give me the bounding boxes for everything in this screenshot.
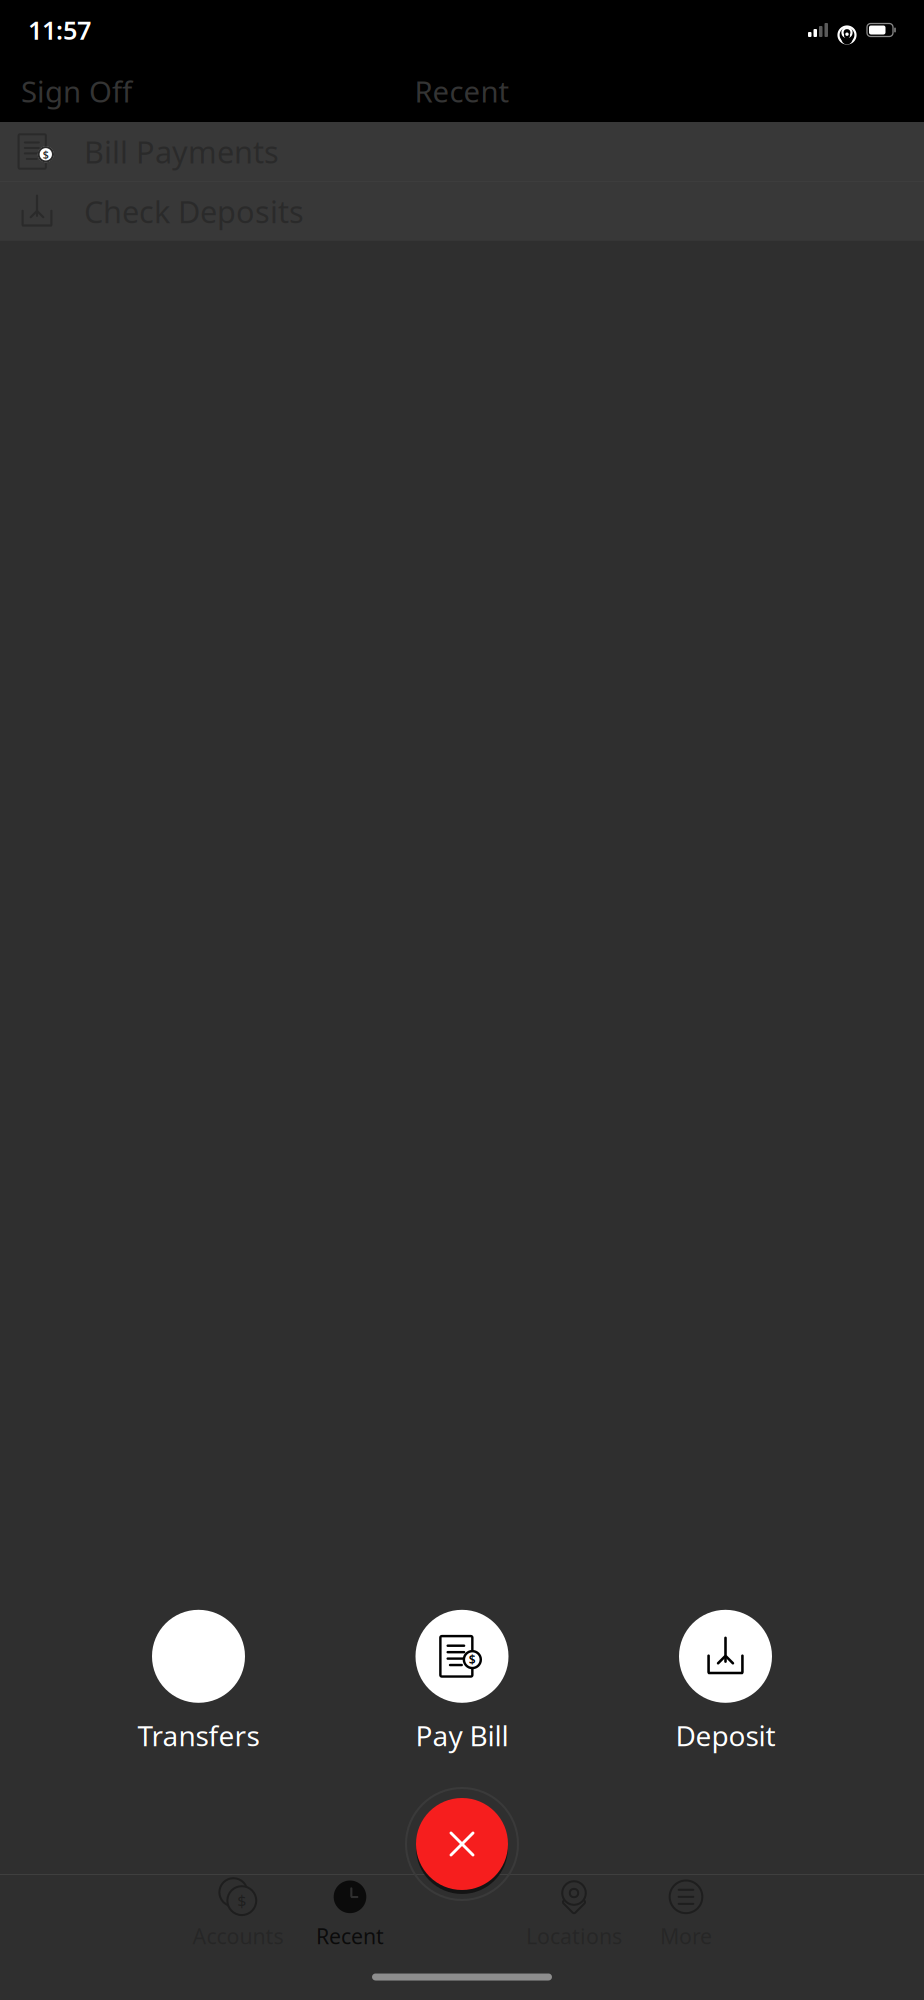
staticText: Transfers: [137, 1717, 259, 1754]
button[interactable]: $: [0, 122, 924, 181]
button[interactable]: Close menu: [404, 1786, 520, 1902]
staticText: Bill Payments: [84, 131, 279, 172]
staticText: $: [469, 1652, 476, 1667]
button[interactable]: Sign Off: [11, 63, 142, 118]
staticText: Sign Off: [21, 71, 132, 110]
staticText: 11:57: [28, 13, 91, 47]
staticText: Pay Bill: [415, 1717, 508, 1754]
button[interactable]: More: [630, 1877, 742, 1951]
button[interactable]: Locations: [518, 1877, 630, 1951]
button[interactable]: Recent: [294, 1877, 406, 1951]
staticText: Recent: [316, 1922, 384, 1950]
staticText: Check Deposits: [84, 191, 304, 232]
staticText: $: [237, 1890, 246, 1911]
button[interactable]: Transfers: [123, 1610, 273, 1754]
button[interactable]: $: [387, 1610, 537, 1754]
staticText: Recent: [414, 71, 509, 110]
staticText: $: [43, 147, 49, 161]
button[interactable]: $: [182, 1877, 294, 1951]
staticText: Deposit: [675, 1717, 775, 1754]
button[interactable]: Deposit: [650, 1610, 800, 1754]
